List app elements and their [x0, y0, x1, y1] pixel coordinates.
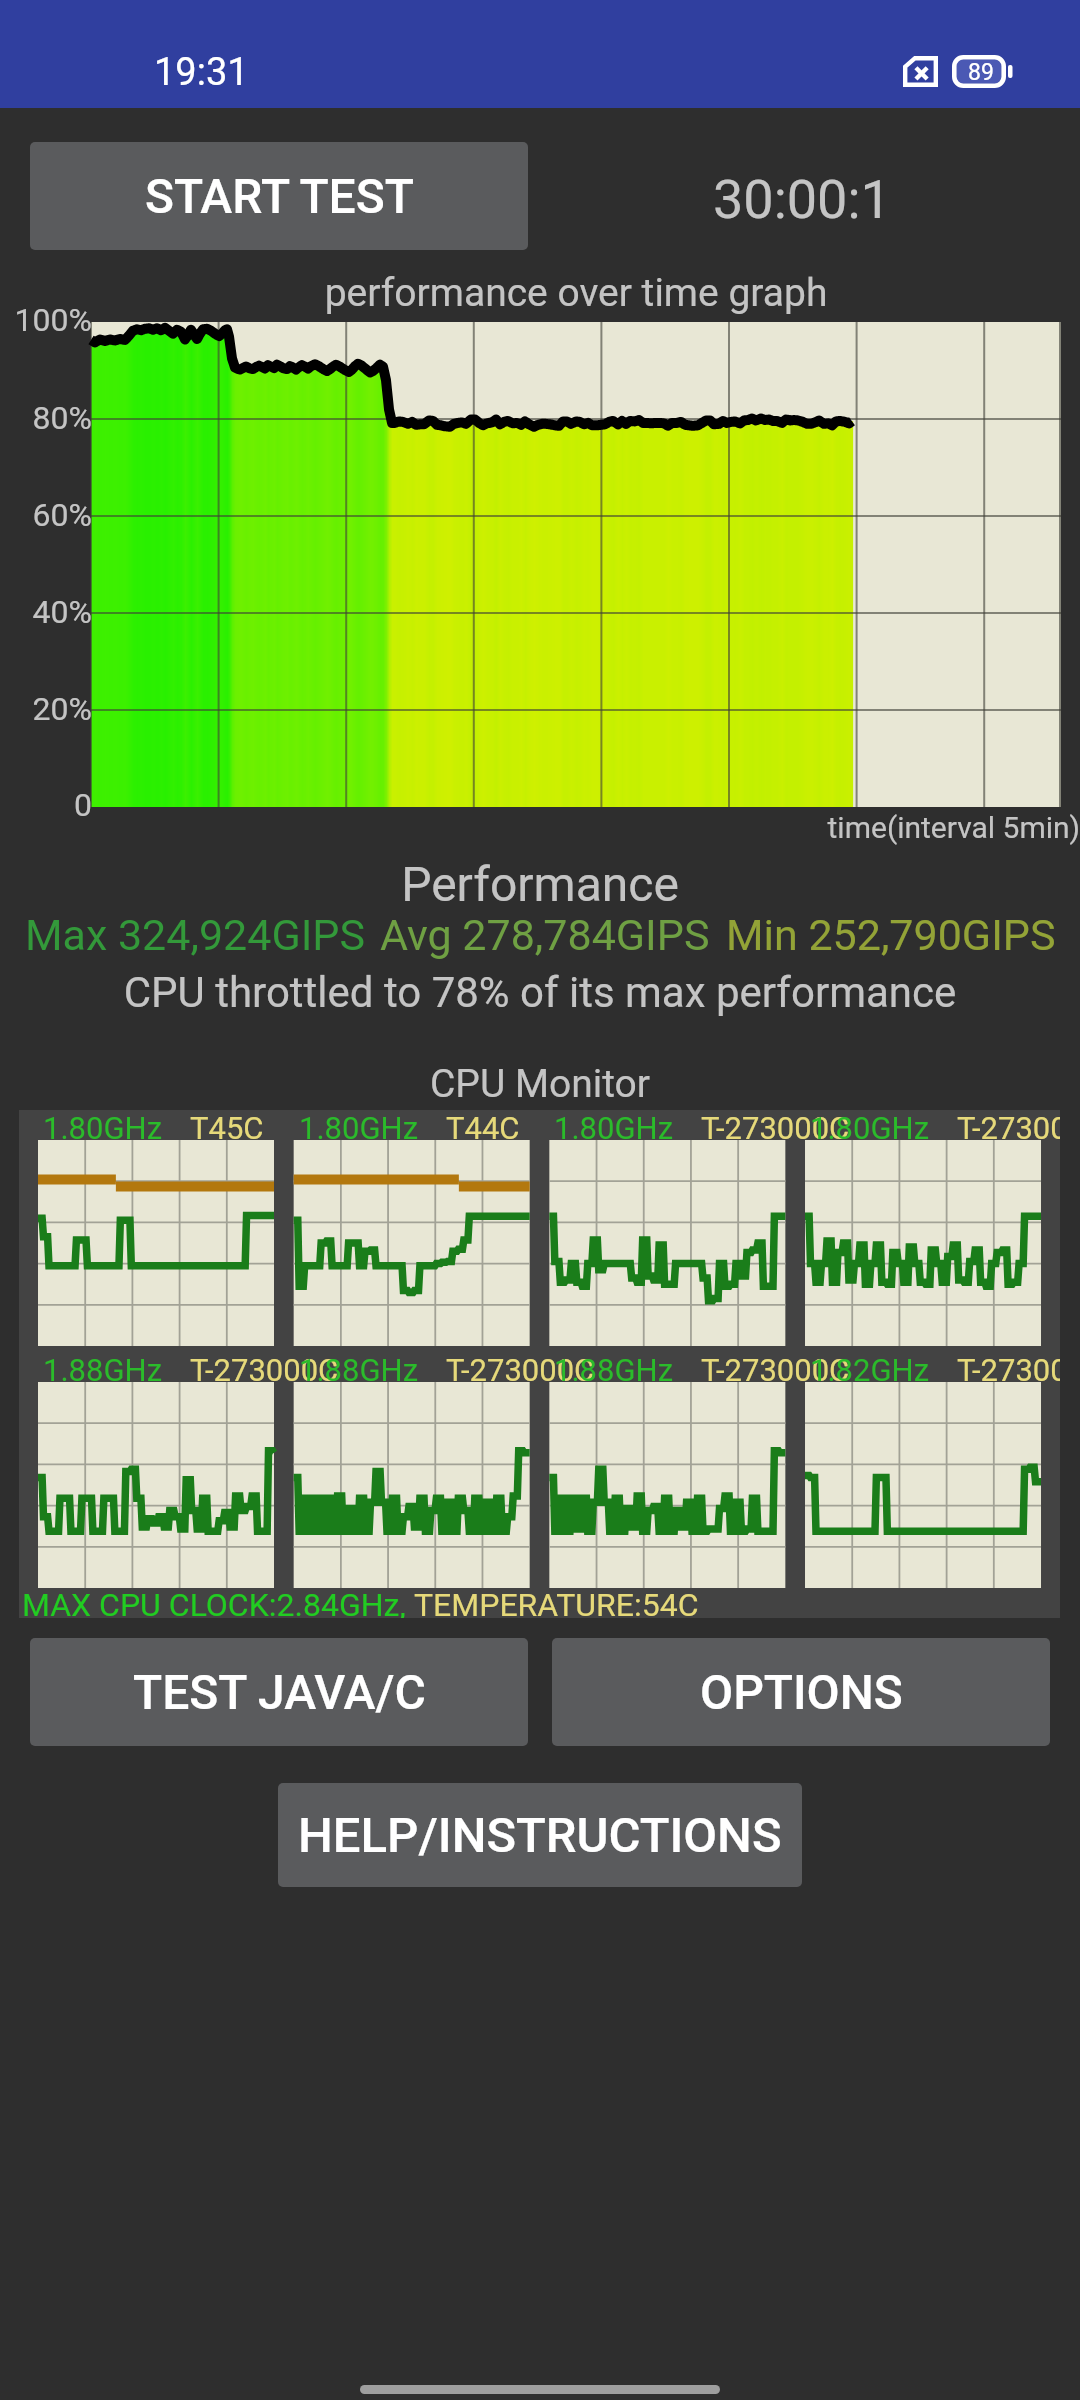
staticText: 30:00:1 — [713, 168, 891, 231]
staticText: T-273000C — [957, 1110, 1060, 1146]
staticText: CPU throttled to 78% of its max performa… — [0, 968, 1080, 1017]
staticText: Performance — [0, 856, 1080, 912]
staticText: T-273000C — [446, 1352, 595, 1388]
other: Battery 89 percent — [952, 55, 1013, 88]
button[interactable]: OPTIONS — [552, 1638, 1050, 1746]
staticText: 1.88GHz — [299, 1352, 419, 1388]
staticText: MAX CPU CLOCK:2.84GHz, — [22, 1586, 414, 1618]
staticText: TEST JAVA/C — [133, 1664, 426, 1720]
staticText: 20% — [0, 690, 92, 728]
staticText: HELP/INSTRUCTIONS — [298, 1807, 782, 1864]
staticText: 80% — [0, 399, 92, 437]
staticText: T-273000C — [701, 1110, 850, 1146]
staticText: performance over time graph — [91, 270, 1061, 316]
staticText: 100% — [0, 301, 92, 339]
other: No SIM card — [903, 56, 938, 87]
staticText: T45C — [190, 1110, 264, 1146]
staticText: 1.80GHz — [810, 1110, 930, 1146]
staticText: Min 252,790GIPS — [726, 910, 1056, 960]
staticText: 19:31 — [154, 50, 249, 95]
staticText: 1.80GHz — [554, 1110, 674, 1146]
staticText: TEMPERATURE:54C — [414, 1586, 699, 1618]
staticText: T-273000C — [190, 1352, 339, 1388]
staticText: 1.88GHz — [554, 1352, 674, 1388]
staticText: 1.80GHz — [43, 1110, 163, 1146]
button[interactable]: HELP/INSTRUCTIONS — [278, 1783, 802, 1887]
staticText: Max 324,924GIPS — [25, 910, 366, 960]
button[interactable]: TEST JAVA/C — [30, 1638, 528, 1746]
staticText: time(interval 5min) — [0, 810, 1080, 845]
staticText: START TEST — [145, 168, 414, 224]
staticText: 40% — [0, 593, 92, 631]
staticText: 89 — [968, 59, 994, 86]
staticText: 60% — [0, 496, 92, 534]
staticText: T44C — [446, 1110, 520, 1146]
staticText: 1.88GHz — [43, 1352, 163, 1388]
staticText: CPU Monitor — [0, 1061, 1080, 1107]
staticText: T-273000C — [957, 1352, 1060, 1388]
staticText: OPTIONS — [700, 1664, 903, 1720]
staticText: 1.80GHz — [299, 1110, 419, 1146]
staticText: T-273000C — [701, 1352, 850, 1388]
staticText: 0 — [0, 786, 92, 824]
button[interactable]: START TEST — [30, 142, 528, 250]
staticText: 1.82GHz — [810, 1352, 930, 1388]
staticText: Avg 278,784GIPS — [380, 910, 710, 960]
